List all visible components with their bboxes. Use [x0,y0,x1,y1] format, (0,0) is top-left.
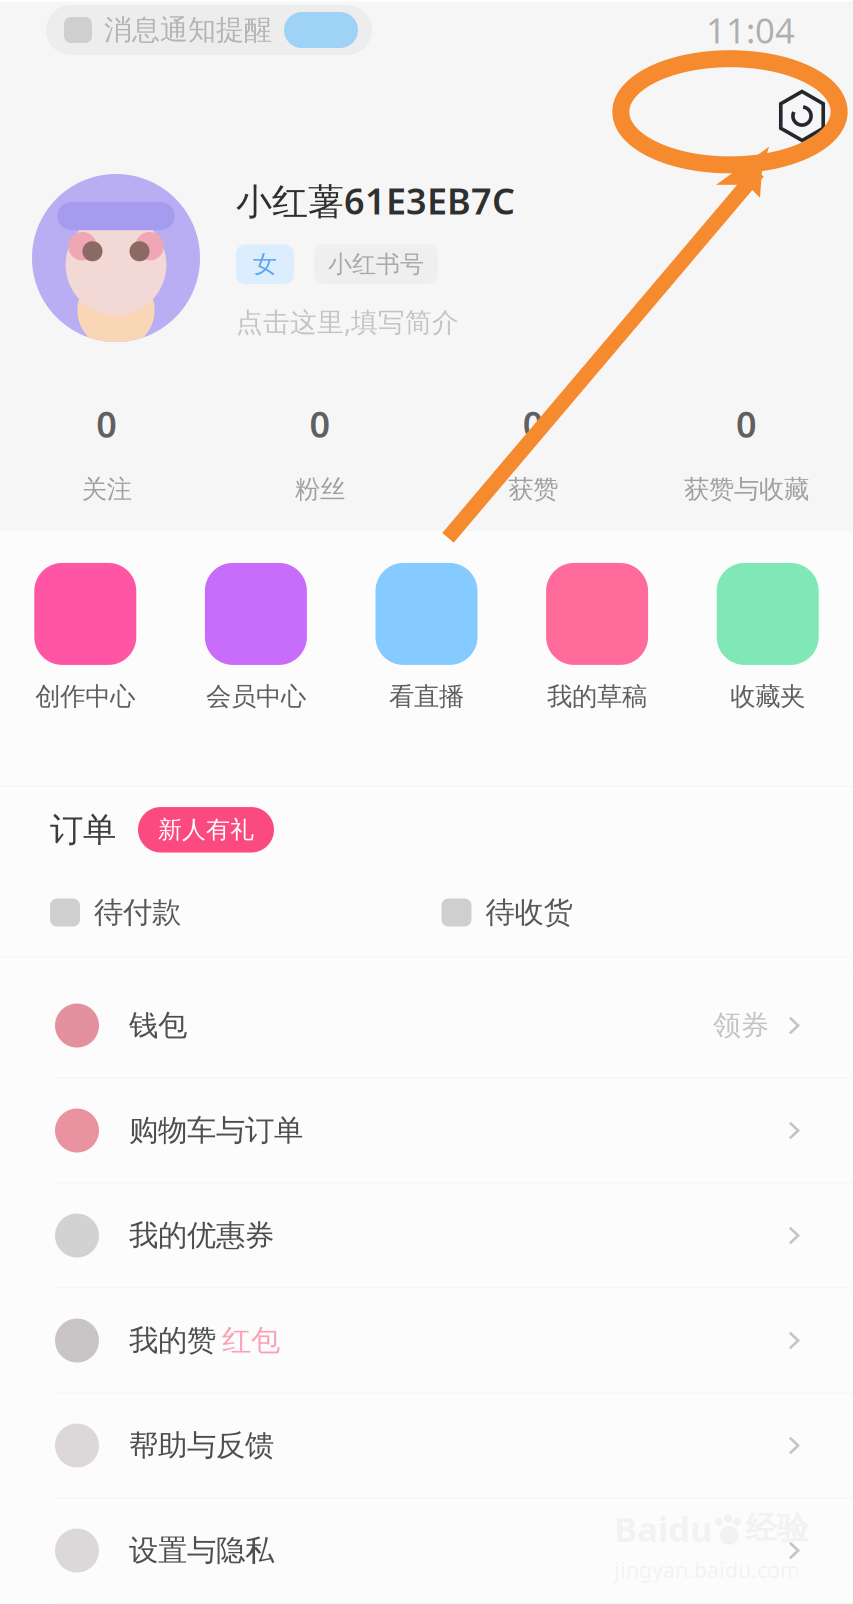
button[interactable]: 0 [640,400,853,505]
staticText: 红包 [222,1322,280,1358]
staticText: 0 [96,400,117,448]
button[interactable]: 帮助与反馈 [0,1393,853,1498]
button[interactable]: 钱包 [0,973,853,1078]
button[interactable]: 0 [426,400,640,505]
staticText: 待付款 [94,894,181,930]
staticText: 购物车与订单 [129,1112,303,1148]
button[interactable]: 收藏夹 [682,563,853,712]
button[interactable]: 设置与隐私 [0,1498,853,1603]
staticText: 我的赞 [129,1322,216,1358]
staticText: 11:04 [706,7,795,53]
staticText: 创作中心 [35,681,135,712]
staticText: 关注 [82,474,132,505]
button[interactable]: 我的赞 [0,1288,853,1393]
staticText: 获赞与收藏 [684,474,809,505]
staticText: 订单 [50,809,116,850]
staticText: 我的优惠券 [129,1217,274,1253]
staticText: Baidu [614,1505,713,1551]
staticText: 收藏夹 [730,681,805,712]
staticText: 小红书号 [328,249,424,279]
button[interactable]: 看直播 [341,563,512,712]
staticText: 看直播 [389,681,464,712]
staticText: 新人有礼 [158,815,254,844]
button[interactable]: 我的优惠券 [0,1183,853,1288]
staticText: 帮助与反馈 [129,1427,274,1463]
button[interactable]: 创作中心 [0,563,171,712]
staticText: 设置与隐私 [129,1532,274,1568]
button[interactable]: 0 [0,400,213,505]
staticText: 0 [523,400,544,448]
button[interactable]: 0 [213,400,426,505]
staticText: 0 [736,400,757,448]
staticText: 小红薯61E3EB7C [236,177,515,224]
button[interactable]: 待收货 [441,894,833,930]
staticText: 经验 [745,1509,809,1548]
staticText: 会员中心 [206,681,306,712]
staticText: 我的草稿 [547,681,647,712]
staticText: jingyan.baidu.com [614,1555,800,1584]
staticText: 粉丝 [295,474,345,505]
button[interactable]: 刷新 [765,69,839,143]
staticText: 获赞 [508,474,558,505]
button[interactable]: 购物车与订单 [0,1078,853,1183]
staticText: 消息通知提醒 [104,13,272,47]
button[interactable]: 待付款 [50,894,441,930]
staticText: 0 [309,400,330,448]
staticText: 待收货 [485,894,572,930]
staticText: 钱包 [129,1007,187,1043]
button[interactable]: 我的草稿 [512,563,682,712]
staticText: 领券 [713,1008,769,1043]
staticText: 女 [253,249,277,279]
staticText: 点击这里,填写简介 [236,304,459,339]
button[interactable]: 会员中心 [171,563,341,712]
